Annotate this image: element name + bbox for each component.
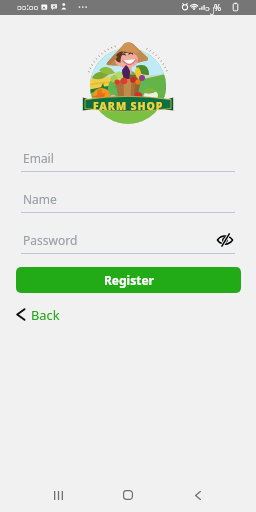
button[interactable]: Recent apps bbox=[40, 486, 76, 504]
button[interactable]: Show password bbox=[215, 232, 235, 248]
staticText: Back bbox=[31, 306, 60, 323]
button[interactable]: Home bbox=[110, 486, 146, 504]
staticText: ၁၂% bbox=[205, 2, 222, 15]
staticText: Password bbox=[23, 232, 78, 248]
staticText: FARM SHOP bbox=[93, 99, 164, 113]
button[interactable]: Email bbox=[21, 147, 235, 172]
staticText: Name bbox=[23, 191, 57, 207]
staticText: Email bbox=[23, 150, 54, 166]
button[interactable]: Register bbox=[16, 267, 241, 293]
button[interactable]: Name bbox=[21, 188, 235, 213]
staticText: ၁၁:၀၀ bbox=[17, 1, 39, 14]
staticText: Register bbox=[104, 272, 154, 288]
button[interactable]: Password bbox=[21, 229, 235, 254]
button[interactable]: Back bbox=[16, 305, 60, 323]
button[interactable]: Back bbox=[180, 486, 216, 504]
